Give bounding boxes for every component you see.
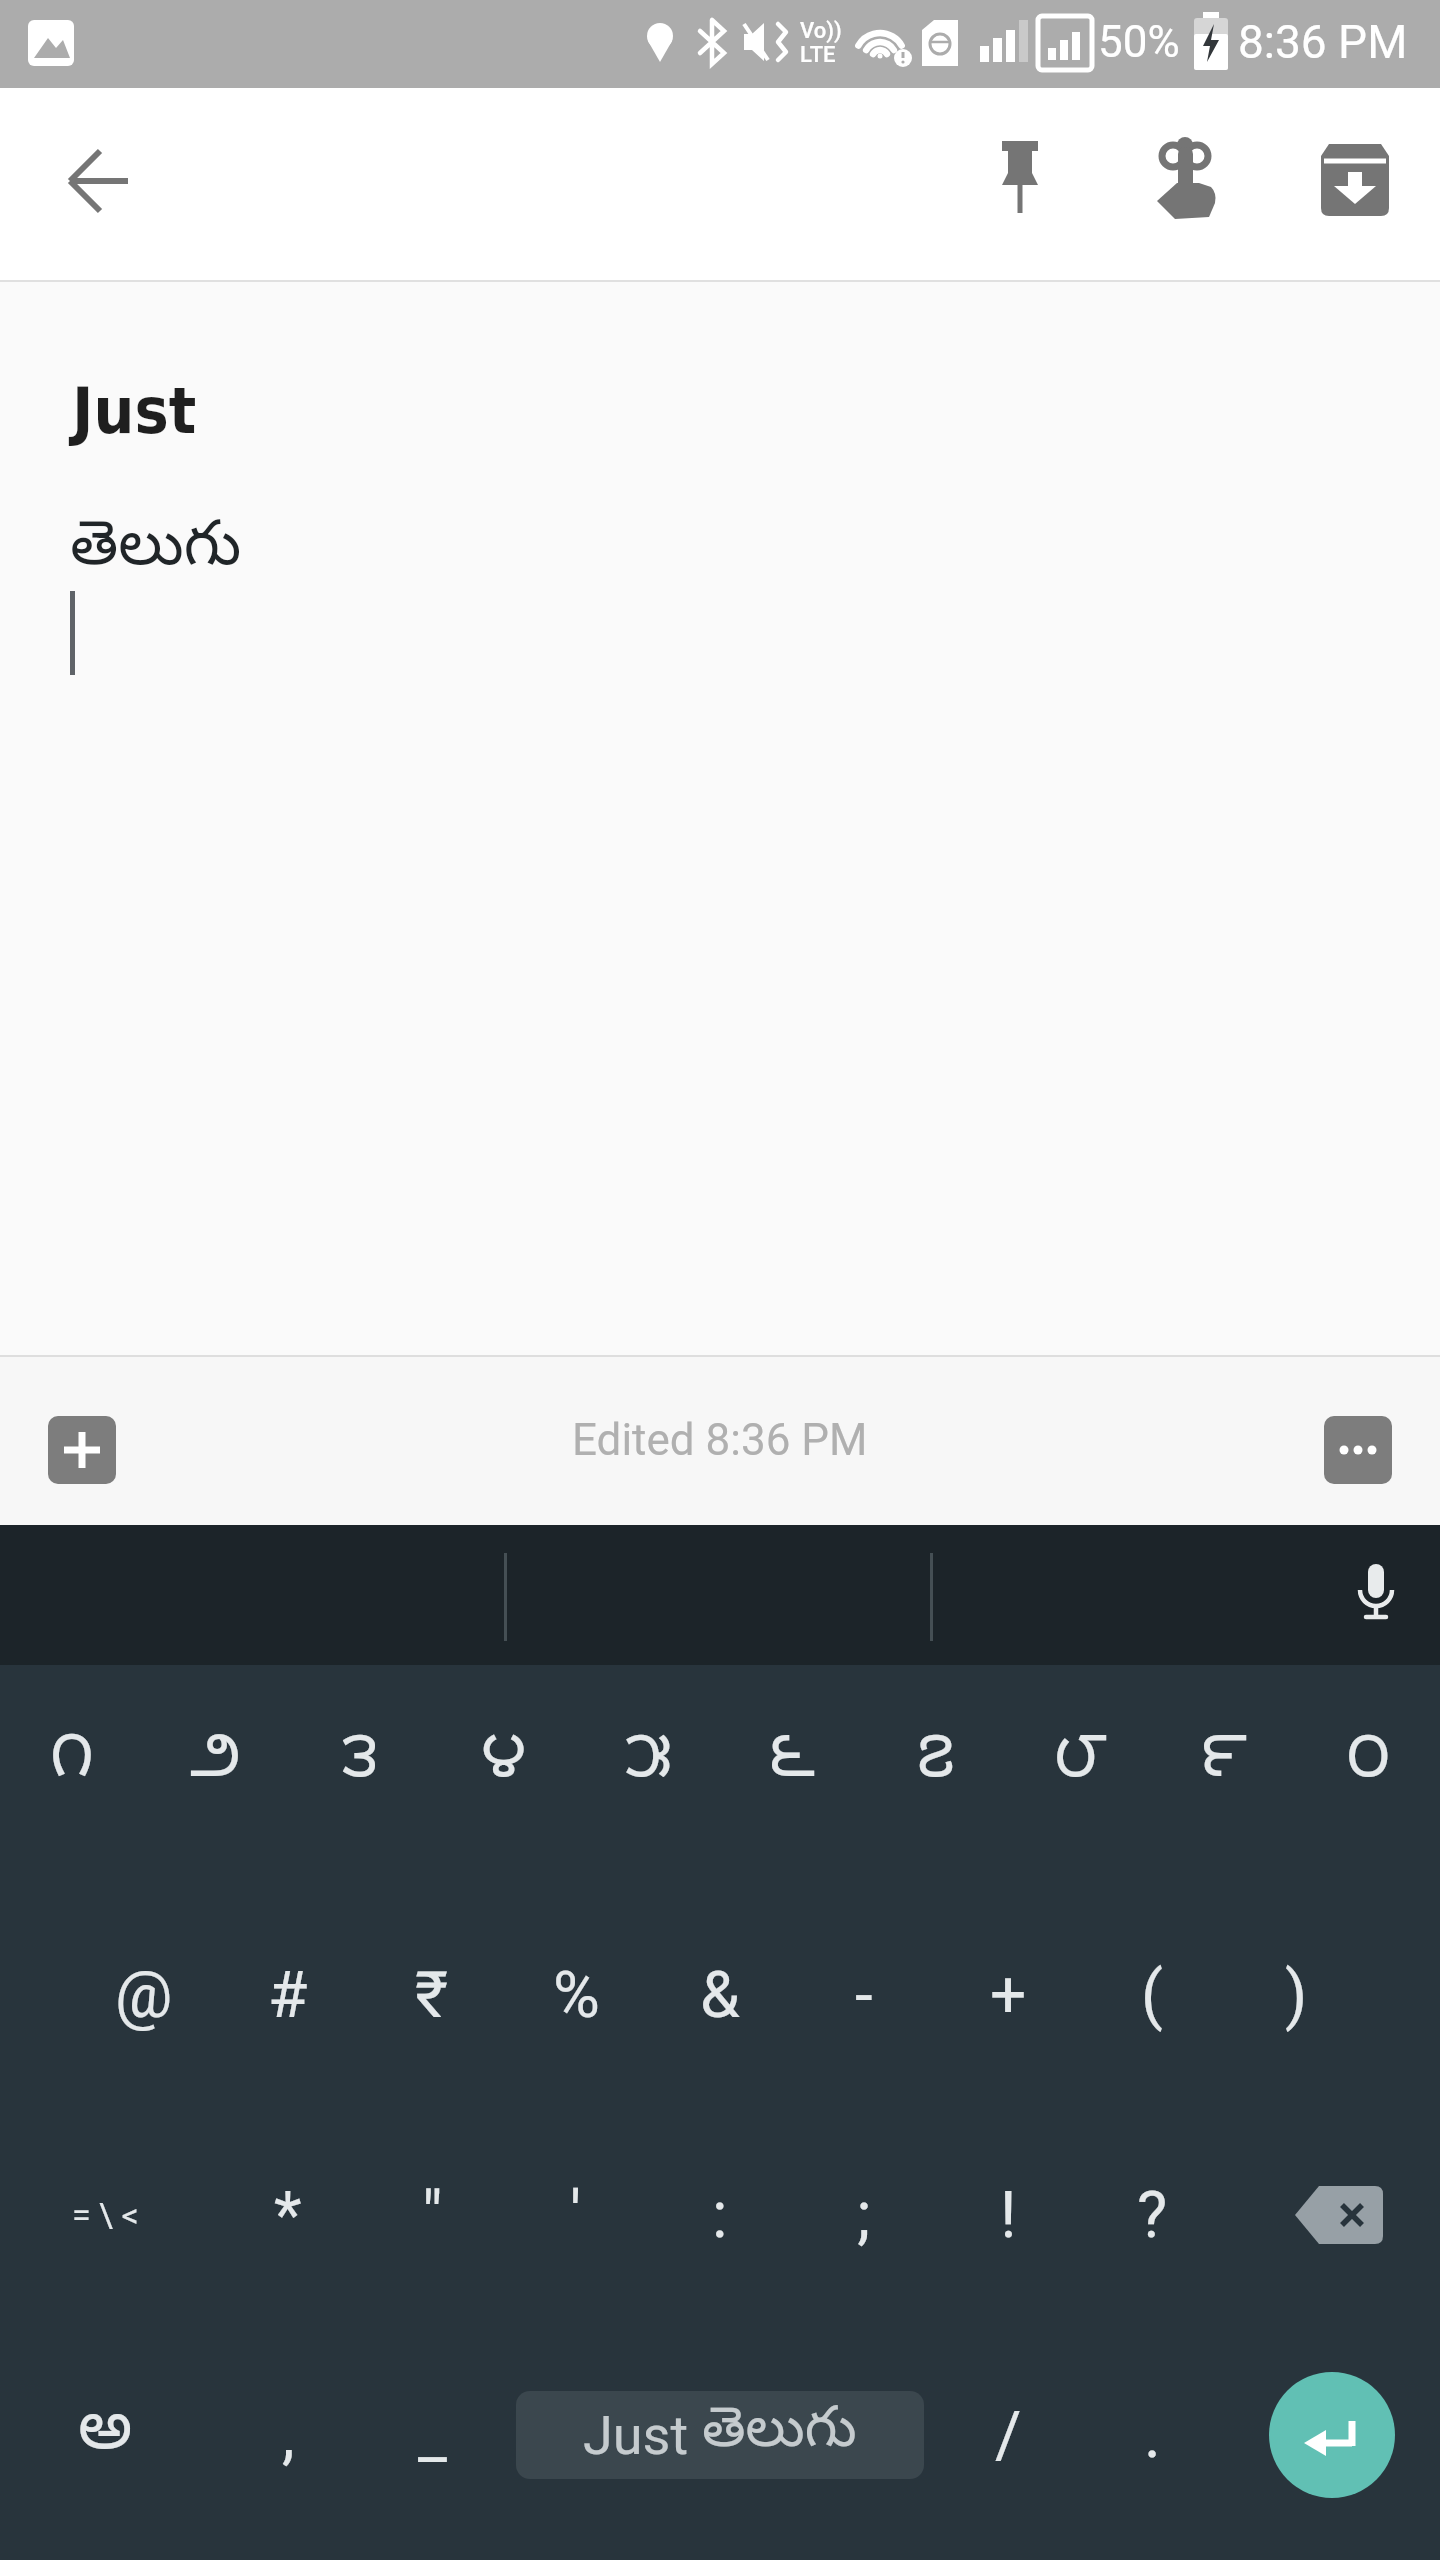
button[interactable]: ౬ xyxy=(722,1663,862,1863)
staticText: Just xyxy=(583,2404,702,2467)
button[interactable] xyxy=(48,1416,116,1484)
button[interactable]: ' xyxy=(506,2115,646,2315)
button[interactable]: & xyxy=(650,1895,790,2095)
button[interactable]: % xyxy=(506,1895,646,2095)
staticText: ౫ xyxy=(625,1719,672,1808)
staticText: Vo)) xyxy=(800,18,842,44)
button[interactable]: ! xyxy=(938,2115,1078,2315)
staticText: ౩ xyxy=(342,1719,379,1808)
button[interactable]: ( xyxy=(1082,1895,1222,2095)
button[interactable]: ) xyxy=(1226,1895,1366,2095)
staticText: ౧ xyxy=(50,1719,94,1808)
button[interactable]: ౪ xyxy=(434,1663,574,1863)
staticText: # xyxy=(268,1958,308,2033)
staticText: 50% xyxy=(1098,16,1180,68)
staticText: ; xyxy=(857,2178,871,2253)
button[interactable] xyxy=(1340,1560,1412,1632)
staticText: " xyxy=(422,2178,443,2253)
staticText: ౦ xyxy=(1346,1719,1391,1808)
button[interactable] xyxy=(1279,2155,1399,2275)
button[interactable]: . xyxy=(1082,2335,1222,2535)
button[interactable]: " xyxy=(362,2115,502,2315)
button[interactable]: _ xyxy=(362,2335,502,2535)
staticText: : xyxy=(712,2178,728,2253)
staticText: . xyxy=(1144,2398,1161,2473)
button[interactable]: / xyxy=(938,2335,1078,2535)
button[interactable]: @ xyxy=(74,1895,214,2095)
staticText: తెలుగు xyxy=(70,510,242,594)
staticText: ౭ xyxy=(917,1719,955,1808)
button[interactable] xyxy=(1137,133,1233,229)
button[interactable]: ౯ xyxy=(1154,1663,1294,1863)
button[interactable]: ? xyxy=(1082,2115,1222,2315)
button[interactable]: Just xyxy=(516,2391,924,2479)
button[interactable]: ₹ xyxy=(362,1895,502,2095)
button[interactable]: = \ < xyxy=(35,2115,175,2315)
staticText: ౨ xyxy=(190,1719,242,1808)
staticText: % xyxy=(553,1958,600,2033)
staticText: - xyxy=(855,1958,873,2033)
staticText: ( xyxy=(1141,1958,1163,2033)
staticText: ₹ xyxy=(415,1958,449,2033)
button[interactable]: ౩ xyxy=(290,1663,430,1863)
button[interactable]: ౦ xyxy=(1298,1663,1438,1863)
staticText: ! xyxy=(1000,2178,1017,2253)
button[interactable] xyxy=(1324,1416,1392,1484)
staticText: + xyxy=(990,1958,1027,2033)
staticText: ౪ xyxy=(481,1719,527,1808)
staticText: & xyxy=(700,1958,740,2033)
staticText: Edited 8:36 PM xyxy=(572,1414,868,1466)
button[interactable]: ౧ xyxy=(2,1663,142,1863)
staticText: ౯ xyxy=(1201,1719,1248,1808)
staticText: , xyxy=(282,2398,295,2473)
button[interactable]: అ xyxy=(35,2335,175,2535)
button[interactable]: - xyxy=(794,1895,934,2095)
button[interactable]: : xyxy=(650,2115,790,2315)
button[interactable] xyxy=(1307,134,1403,230)
button[interactable] xyxy=(50,133,146,229)
staticText: ౮ xyxy=(1054,1719,1107,1808)
button[interactable]: * xyxy=(218,2115,358,2315)
staticText: అ xyxy=(78,2389,133,2481)
button[interactable]: ౮ xyxy=(1010,1663,1150,1863)
button[interactable]: ౨ xyxy=(146,1663,286,1863)
staticText: LTE xyxy=(800,42,836,68)
staticText: / xyxy=(995,2398,1022,2473)
staticText: ? xyxy=(1137,2178,1168,2253)
button[interactable]: ౫ xyxy=(578,1663,718,1863)
button[interactable] xyxy=(1269,2372,1395,2498)
button[interactable] xyxy=(972,133,1068,229)
button[interactable]: + xyxy=(938,1895,1078,2095)
staticText: Just xyxy=(72,374,197,449)
staticText: = \ < xyxy=(72,2195,139,2235)
staticText: 8:36 PM xyxy=(1238,15,1408,69)
button[interactable]: , xyxy=(218,2335,358,2535)
staticText: తెలుగు xyxy=(702,2397,857,2473)
staticText: * xyxy=(274,2178,302,2253)
button[interactable]: ౭ xyxy=(866,1663,1006,1863)
button[interactable]: ; xyxy=(794,2115,934,2315)
staticText: _ xyxy=(418,2398,447,2473)
button[interactable]: # xyxy=(218,1895,358,2095)
staticText: ' xyxy=(570,2178,582,2253)
staticText: @ xyxy=(115,1958,173,2033)
staticText: ౬ xyxy=(769,1719,816,1808)
staticText: ) xyxy=(1285,1958,1308,2033)
